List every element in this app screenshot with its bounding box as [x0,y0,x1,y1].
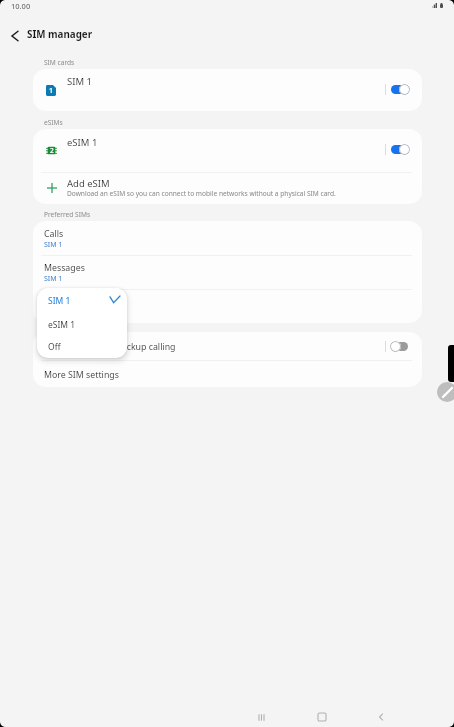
staticText: Mobile data [44,297,93,309]
button[interactable]: Home [306,705,338,727]
button[interactable]: Edge panel handle [437,382,454,402]
staticText: SIM cards [44,58,75,67]
button[interactable]: Toggle on [391,145,408,154]
staticText: SIM 1 [48,295,71,307]
staticText: Add eSIM [67,177,110,190]
staticText: More SIM settings [44,369,119,381]
staticText: 10.00 [11,1,31,11]
staticText: 1 [49,86,54,96]
staticText: SIM 1 [67,75,92,88]
button[interactable]: Off [37,334,127,358]
button[interactable]: Back [365,705,397,727]
staticText: Messages [44,262,85,274]
staticText: SIM manager [27,28,93,41]
staticText: Backup calling [116,341,176,353]
button[interactable]: SIM 1 selected [37,288,127,311]
staticText: Calls [44,228,64,240]
staticText: SIM 1 [44,274,63,284]
staticText: eSIM 1 [48,319,76,331]
staticText: eSIM 1 [67,136,98,149]
staticText: 2 [50,146,54,155]
button[interactable]: Toggle off [391,342,408,351]
staticText: eSIMs [44,118,63,127]
button[interactable]: eSIM 1 [37,311,127,334]
button[interactable]: Edge panel [448,345,454,382]
button[interactable]: Back [4,25,26,47]
button[interactable]: Toggle on [391,85,408,94]
staticText: Download an eSIM so you can connect to m… [67,189,336,198]
staticText: Off [48,341,61,353]
button[interactable]: Recents [245,705,277,727]
staticText: SIM 1 [44,240,63,250]
staticText: Preferred SIMs [44,210,91,219]
